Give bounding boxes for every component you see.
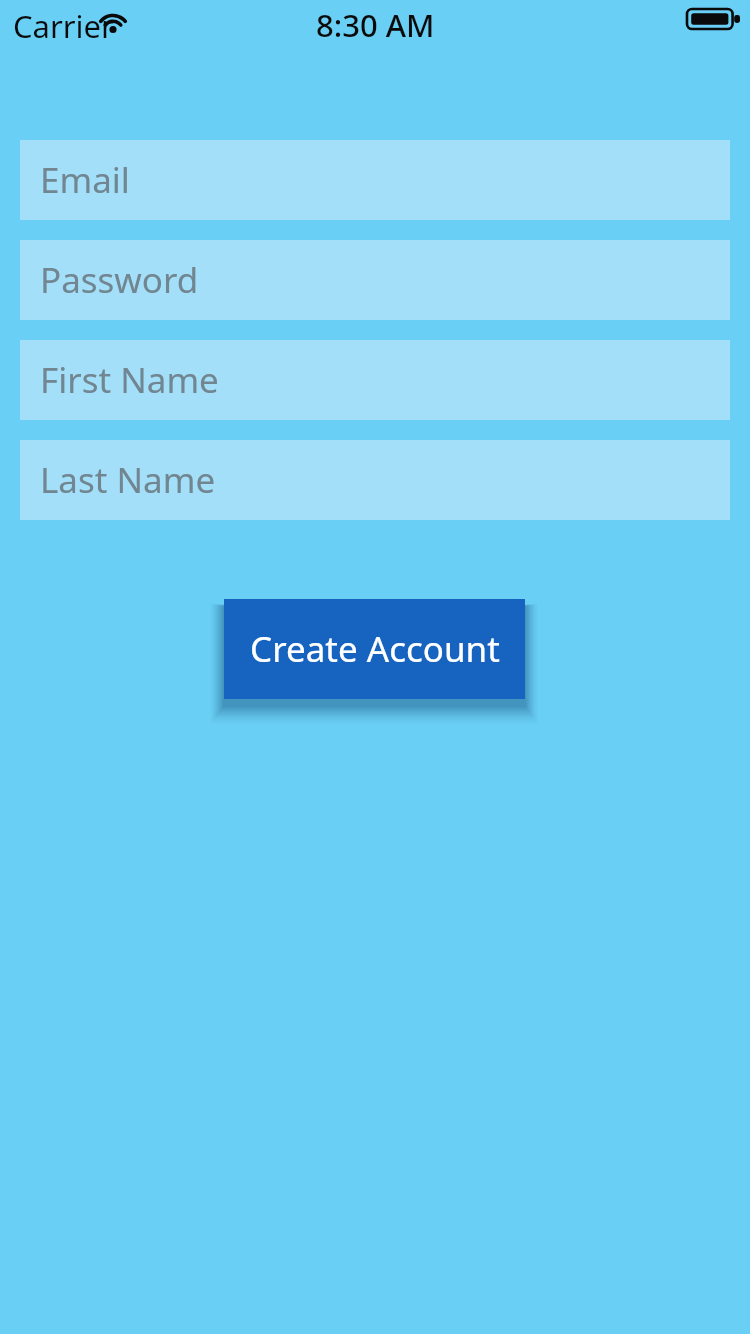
button[interactable]: Email: [20, 140, 730, 220]
button[interactable]: First Name: [20, 340, 730, 420]
button[interactable]: Last Name: [20, 440, 730, 520]
button[interactable]: Create Account: [224, 599, 525, 699]
staticText: Last Name: [40, 456, 216, 504]
other: Wi-Fi signal: [96, 9, 130, 33]
staticText: Email: [40, 156, 130, 204]
other: Battery full: [687, 9, 740, 29]
staticText: First Name: [40, 356, 219, 404]
staticText: 8:30 AM: [316, 4, 435, 46]
button[interactable]: Password: [20, 240, 730, 320]
staticText: Carrier: [13, 5, 114, 47]
staticText: Create Account: [250, 625, 500, 673]
staticText: Password: [40, 256, 199, 304]
